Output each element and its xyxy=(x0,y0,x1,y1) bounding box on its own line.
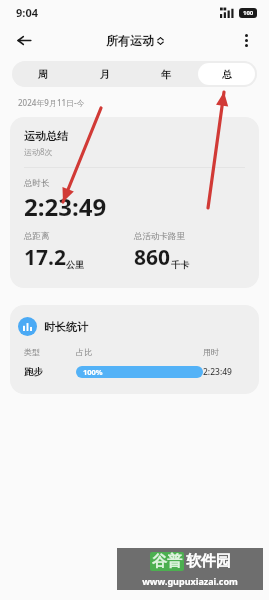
staticText: 周 xyxy=(38,68,48,81)
button[interactable]: 月 xyxy=(76,63,133,85)
staticText: 2024年9月11日-今 xyxy=(18,97,85,108)
button[interactable]: 运动总结 xyxy=(10,117,259,288)
staticText: 公里 xyxy=(66,259,84,270)
button[interactable]: 时长统计 xyxy=(10,305,259,394)
staticText: 总活动卡路里 xyxy=(134,231,185,242)
staticText: 总 xyxy=(222,68,232,81)
staticText: 谷普 xyxy=(152,552,182,571)
button[interactable]: More options xyxy=(231,25,261,55)
staticText: 时长统计 xyxy=(44,320,88,334)
staticText: 所有运动 xyxy=(106,33,154,48)
staticText: 9:04 xyxy=(16,5,38,20)
staticText: 月 xyxy=(100,68,110,81)
staticText: 2:23:49 xyxy=(24,190,107,223)
staticText: 17.2 xyxy=(24,243,66,272)
staticText: 类型 xyxy=(24,347,76,357)
button[interactable]: Back xyxy=(8,25,40,55)
staticText: 总时长 xyxy=(24,178,50,189)
staticText: 860 xyxy=(134,243,171,272)
staticText: 跑步 xyxy=(24,366,76,378)
button[interactable]: 所有运动 xyxy=(106,33,164,48)
staticText: 用时 xyxy=(203,347,245,357)
staticText: 软件园 xyxy=(186,552,231,571)
staticText: 千卡 xyxy=(171,259,189,270)
staticText: 总距离 xyxy=(24,231,50,242)
staticText: 100% xyxy=(83,367,103,377)
staticText: 100 xyxy=(243,9,254,17)
staticText: 年 xyxy=(161,68,171,81)
button[interactable]: 总 xyxy=(198,63,255,85)
staticText: 运动总结 xyxy=(24,129,68,143)
staticText: 占比 xyxy=(76,347,203,357)
staticText: www.gupuxiazai.com xyxy=(142,575,238,587)
staticText: 2:23:49 xyxy=(203,366,245,378)
button[interactable]: 年 xyxy=(137,63,194,85)
staticText: 运动8次 xyxy=(24,146,53,157)
button[interactable]: 周 xyxy=(14,63,72,85)
